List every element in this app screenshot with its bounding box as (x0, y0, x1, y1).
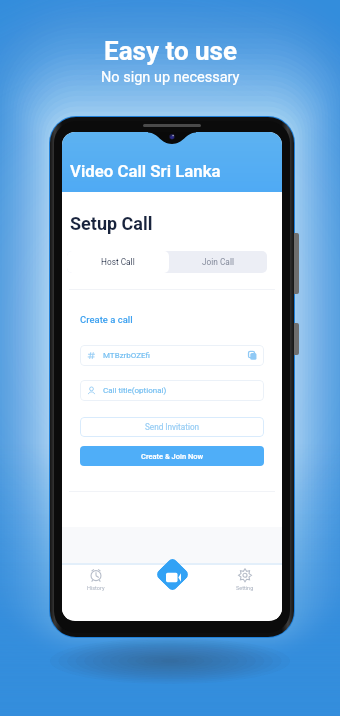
button[interactable]: Start video call (155, 557, 190, 592)
staticText: Host Call (101, 257, 135, 267)
button[interactable]: MTBzrbOZEfi (80, 345, 264, 366)
staticText: Join Call (202, 257, 234, 267)
staticText: Easy to use (104, 36, 237, 66)
staticText: Setup Call (70, 213, 153, 234)
button[interactable]: History (76, 568, 116, 591)
staticText: Setting (236, 585, 254, 591)
button[interactable]: Setting (225, 568, 265, 591)
staticText: No sign up necessary (101, 69, 240, 86)
button[interactable]: Create & Join Now (80, 446, 264, 466)
button[interactable]: Join Call (169, 251, 267, 273)
staticText: Video Call Sri Lanka (70, 161, 221, 181)
staticText: Create & Join Now (141, 452, 204, 461)
staticText: MTBzrbOZEfi (103, 351, 150, 360)
button[interactable]: Host Call (67, 251, 169, 273)
staticText: Send Invitation (145, 422, 200, 432)
button[interactable]: Call title(optional) (80, 380, 264, 401)
staticText: Call title(optional) (103, 386, 167, 395)
staticText: Create a call (80, 314, 133, 325)
staticText: History (87, 585, 105, 591)
button[interactable]: Send Invitation (80, 417, 264, 437)
